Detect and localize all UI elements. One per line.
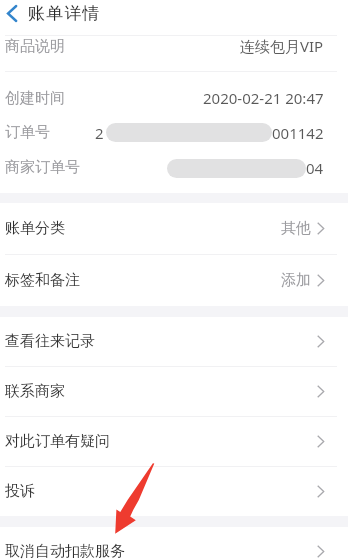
button[interactable]: 创建时间 [0, 81, 348, 115]
staticText: 查看往来记录 [5, 332, 95, 351]
staticText: 订单号 [5, 123, 50, 142]
staticText: 2 [95, 123, 104, 143]
staticText: 商品说明 [5, 37, 65, 56]
staticText: 其他 [281, 219, 311, 238]
staticText: 取消自动扣款服务 [5, 542, 125, 560]
staticText: 添加 [281, 271, 311, 290]
staticText: 账单详情 [28, 3, 101, 24]
button[interactable]: Back [0, 0, 24, 26]
staticText: 投诉 [5, 482, 35, 501]
button[interactable]: 商家订单号 [0, 150, 348, 185]
button[interactable]: 取消自动扣款服务 [0, 527, 348, 560]
staticText: 商家订单号 [5, 158, 80, 177]
button[interactable]: 投诉 [0, 467, 348, 516]
staticText: 创建时间 [5, 89, 65, 108]
staticText: 对此订单有疑问 [5, 432, 110, 451]
button[interactable]: 商品说明 [0, 36, 348, 56]
button[interactable]: 查看往来记录 [0, 317, 348, 366]
button[interactable]: 标签和备注 [0, 255, 348, 306]
staticText: 04 [306, 158, 324, 178]
staticText: 连续包月VIP [240, 36, 324, 56]
button[interactable]: 联系商家 [0, 367, 348, 416]
button[interactable]: 订单号 [0, 115, 348, 150]
staticText: 001142 [272, 123, 324, 143]
button[interactable]: 账单分类 [0, 203, 348, 254]
staticText: 联系商家 [5, 382, 65, 401]
button[interactable]: 对此订单有疑问 [0, 417, 348, 466]
staticText: 账单分类 [5, 219, 65, 238]
staticText: 标签和备注 [5, 271, 80, 290]
staticText: 2020-02-21 20:47 [203, 88, 324, 108]
